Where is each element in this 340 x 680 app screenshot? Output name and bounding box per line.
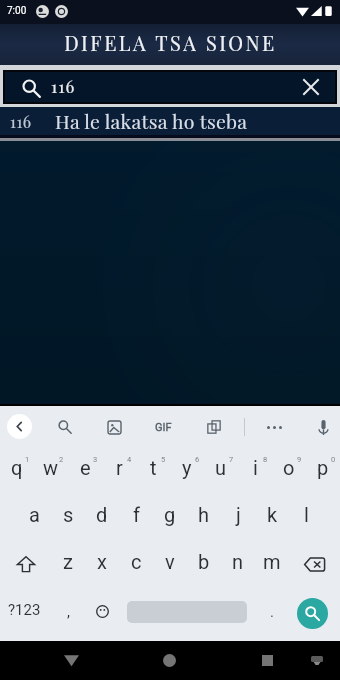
staticText: j	[236, 503, 241, 526]
staticText: x	[97, 550, 107, 573]
staticText: g	[164, 503, 176, 526]
staticText: 3	[93, 455, 98, 464]
button[interactable]: f	[119, 494, 153, 541]
button[interactable]: s	[51, 494, 85, 541]
button[interactable]: ?123	[7, 588, 41, 635]
staticText: d	[96, 503, 108, 526]
button[interactable]: i	[238, 447, 272, 494]
button[interactable]: v	[153, 541, 187, 588]
button[interactable]: k	[255, 494, 289, 541]
button[interactable]: y	[170, 447, 204, 494]
button[interactable]: Home	[163, 654, 176, 667]
staticText: k	[267, 503, 278, 526]
staticText: a	[29, 503, 40, 526]
button[interactable]: h	[187, 494, 221, 541]
button[interactable]: n	[221, 541, 255, 588]
button[interactable]: q	[0, 447, 34, 494]
button[interactable]: 116	[5, 72, 335, 102]
button[interactable]: Clipboard	[200, 413, 228, 441]
button[interactable]: l	[289, 494, 323, 541]
staticText: w	[43, 456, 59, 479]
button[interactable]: ,	[51, 588, 85, 635]
staticText: o	[283, 456, 295, 479]
staticText: r	[116, 456, 123, 479]
staticText: 116	[10, 111, 32, 132]
staticText: 4	[127, 455, 132, 464]
staticText: n	[232, 550, 244, 573]
button[interactable]: GIF	[149, 413, 177, 441]
staticText: i	[253, 456, 258, 479]
staticText: q	[11, 456, 23, 479]
button[interactable]: d	[85, 494, 119, 541]
staticText: 7	[229, 455, 234, 464]
staticText: c	[131, 550, 142, 573]
staticText: z	[63, 550, 73, 573]
staticText: l	[304, 503, 309, 526]
staticText: f	[133, 503, 140, 526]
button[interactable]: Voice input	[309, 413, 337, 441]
button[interactable]: Backspace	[289, 541, 340, 588]
staticText: 5	[161, 455, 166, 464]
button[interactable]: o	[272, 447, 306, 494]
button[interactable]: w	[34, 447, 68, 494]
button[interactable]: j	[221, 494, 255, 541]
button[interactable]: e	[68, 447, 102, 494]
staticText: 2	[59, 455, 64, 464]
staticText: u	[215, 456, 227, 479]
staticText: 1	[25, 455, 30, 464]
button[interactable]: Hide keyboard	[311, 656, 323, 665]
button[interactable]: a	[17, 494, 51, 541]
staticText: s	[63, 503, 74, 526]
staticText: v	[165, 550, 175, 573]
button[interactable]: Back	[7, 414, 32, 439]
staticText: h	[198, 503, 210, 526]
staticText: 6	[195, 455, 200, 464]
button[interactable]: u	[204, 447, 238, 494]
staticText: 0	[331, 455, 336, 464]
button[interactable]: z	[51, 541, 85, 588]
button[interactable]: x	[85, 541, 119, 588]
staticText: p	[317, 456, 329, 479]
button[interactable]: Emoji	[85, 588, 119, 635]
staticText: 7:00	[7, 5, 27, 17]
staticText: m	[263, 550, 281, 573]
other: Clear search	[304, 80, 318, 94]
button[interactable]: m	[255, 541, 289, 588]
staticText: b	[198, 550, 210, 573]
button[interactable]: Search	[297, 598, 328, 629]
button[interactable]: c	[119, 541, 153, 588]
button[interactable]: Stickers	[100, 413, 128, 441]
staticText: 8	[263, 455, 268, 464]
button[interactable]: .	[256, 588, 288, 635]
button[interactable]: Shift	[0, 541, 51, 588]
staticText: 116	[51, 75, 76, 98]
staticText: Ha le lakatsa ho tseba	[55, 108, 248, 134]
button[interactable]: More options	[260, 413, 288, 441]
staticText: y	[182, 456, 192, 479]
button[interactable]: 116	[0, 107, 340, 141]
button[interactable]: t	[136, 447, 170, 494]
staticText: GIF	[155, 421, 172, 434]
staticText: e	[80, 456, 91, 479]
button[interactable]: Back	[64, 654, 79, 667]
staticText: 9	[297, 455, 302, 464]
staticText: t	[150, 456, 157, 479]
button[interactable]: Search	[51, 413, 79, 441]
staticText: ,	[67, 603, 70, 621]
button[interactable]: b	[187, 541, 221, 588]
button[interactable]: p	[306, 447, 340, 494]
staticText: DIFELA TSA SIONE	[64, 29, 277, 56]
button[interactable]: r	[102, 447, 136, 494]
button[interactable]: g	[153, 494, 187, 541]
staticText: .	[270, 603, 274, 621]
staticText: ?123	[8, 601, 41, 619]
